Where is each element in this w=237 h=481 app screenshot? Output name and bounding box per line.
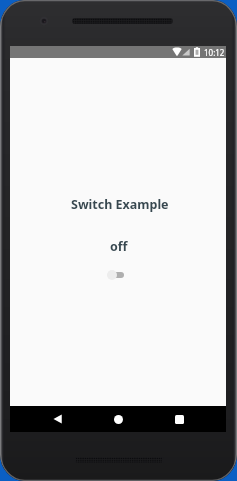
button[interactable]: Home [102,406,135,432]
button[interactable]: Back [41,406,74,432]
staticText: off [110,238,128,255]
staticText: 10:12 [204,47,225,58]
staticText: Switch Example [71,196,169,213]
button[interactable]: Recents [163,406,196,432]
button[interactable]: Toggle switch, off [107,270,129,284]
